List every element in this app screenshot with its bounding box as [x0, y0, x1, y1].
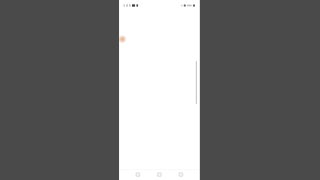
button[interactable]: Projects [156, 172, 163, 177]
button[interactable]: Chats [134, 172, 141, 177]
button[interactable]: Account [177, 172, 184, 177]
